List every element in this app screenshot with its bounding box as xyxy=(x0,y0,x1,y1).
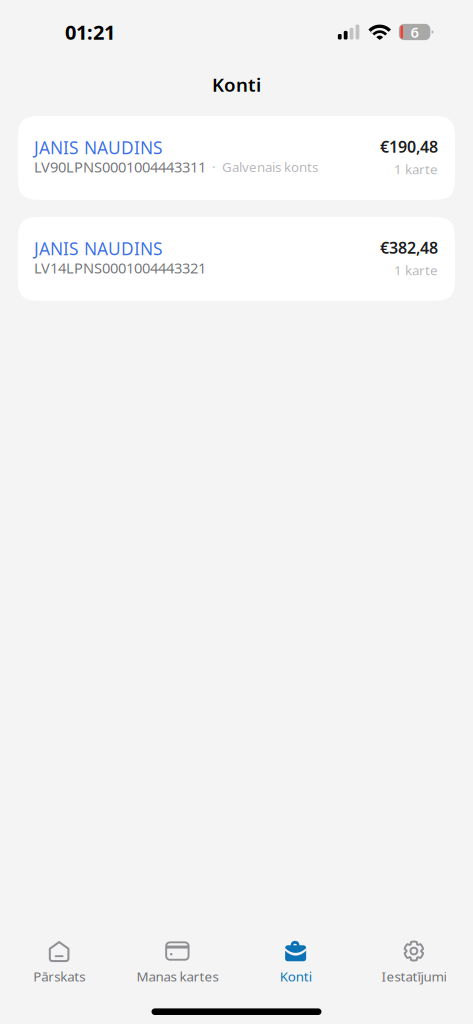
staticText: Konti xyxy=(280,967,312,985)
staticText: LV14LPNS0001004443321 xyxy=(34,258,206,277)
staticText: JANIS NAUDINS xyxy=(34,136,163,159)
staticText: LV90LPNS0001004443311 xyxy=(34,157,206,176)
staticText: Pārskats xyxy=(33,967,85,985)
button[interactable]: Pārskats xyxy=(0,940,118,984)
staticText: 1 karte xyxy=(394,160,438,178)
button[interactable]: Konti xyxy=(236,940,355,984)
staticText: 1 karte xyxy=(394,261,438,279)
staticText: · xyxy=(206,158,222,176)
staticText: 01:21 xyxy=(65,19,115,45)
staticText: €190,48 xyxy=(380,136,438,157)
staticText: 6 xyxy=(411,22,419,42)
staticText: Iestatījumi xyxy=(381,967,446,985)
staticText: JANIS NAUDINS xyxy=(34,237,163,260)
button[interactable]: JANIS NAUDINS xyxy=(18,116,455,200)
staticText: €382,48 xyxy=(380,237,438,258)
staticText: Konti xyxy=(212,72,261,97)
button[interactable]: JANIS NAUDINS xyxy=(18,217,455,301)
staticText: Galvenais konts xyxy=(222,158,318,176)
staticText: Manas kartes xyxy=(136,967,218,985)
button[interactable]: Manas kartes xyxy=(118,940,236,984)
button[interactable]: Iestatījumi xyxy=(355,940,473,984)
